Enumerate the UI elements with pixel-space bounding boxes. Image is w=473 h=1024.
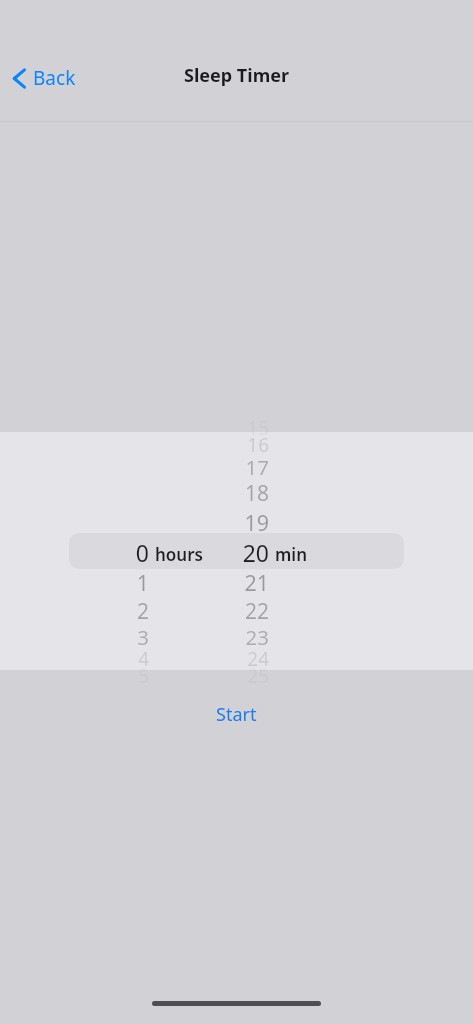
staticText: 17 (245, 453, 269, 481)
staticText: 0 (135, 537, 149, 568)
staticText: 2 (136, 597, 149, 626)
staticText: hours (155, 543, 203, 566)
button[interactable]: Back (7, 61, 82, 95)
staticText: 23 (245, 623, 269, 651)
staticText: 24 (247, 646, 269, 672)
staticText: Back (33, 65, 76, 91)
staticText: 20 (242, 537, 269, 568)
staticText: min (275, 543, 307, 566)
staticText: 5 (138, 663, 149, 689)
staticText: 1 (136, 568, 149, 597)
staticText: 19 (244, 508, 269, 537)
staticText: Sleep Timer (184, 63, 289, 88)
staticText: 22 (244, 597, 269, 626)
staticText: 15 (247, 415, 269, 441)
staticText: 3 (137, 623, 149, 651)
staticText: 21 (244, 568, 269, 597)
staticText: Start (216, 702, 257, 727)
staticText: 18 (244, 479, 269, 508)
staticText: 16 (247, 432, 269, 458)
staticText: 4 (138, 646, 149, 672)
button[interactable] (69, 533, 404, 569)
staticText: 25 (247, 663, 269, 689)
button[interactable]: Start (190, 695, 283, 734)
